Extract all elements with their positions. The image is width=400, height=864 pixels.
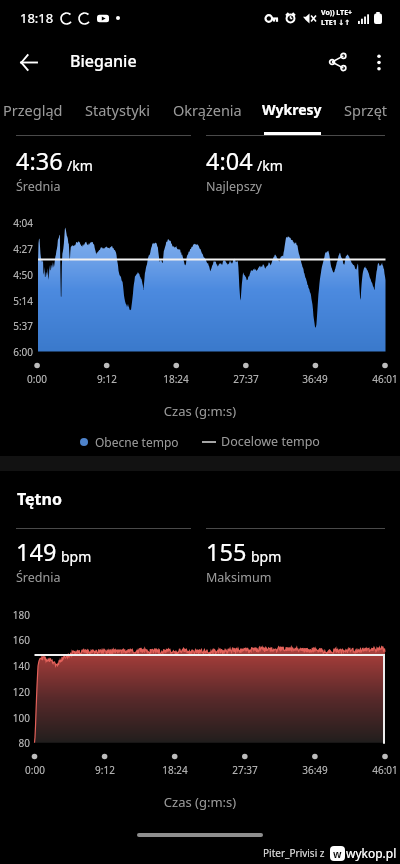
button[interactable]: Share [320,44,356,80]
button[interactable]: Sprzęt [330,88,400,135]
staticText: Czas (g:m:s) [0,402,400,420]
staticText: 9:12 [85,372,129,386]
staticText: Piter_Privisi z [263,846,325,860]
staticText: 4:36 [16,145,63,177]
button[interactable]: Przegląd [0,88,75,135]
button[interactable]: Statystyki [70,88,166,135]
button[interactable]: More options [361,44,397,80]
staticText: 149 [16,536,57,568]
staticText: Średnia [16,569,61,586]
button[interactable]: Okrążenia [160,88,254,135]
staticText: wykop.pl [346,845,397,861]
staticText: Sprzęt [344,100,388,120]
staticText: 46:01 [363,372,400,386]
staticText: 6:00 [0,345,33,359]
staticText: 5:37 [0,319,33,333]
staticText: Statystyki [85,100,151,120]
staticText: 18:24 [154,372,198,386]
staticText: LTE1 ↓↑ [321,18,351,28]
staticText: 100 [0,711,30,725]
staticText: 18:18 [20,9,54,27]
staticText: 140 [0,659,30,673]
staticText: 4:27 [0,242,33,256]
staticText: 46:01 [363,763,400,777]
staticText: 36:49 [293,372,337,386]
staticText: Średnia [16,178,61,195]
staticText: 0:00 [15,372,59,386]
staticText: 4:50 [0,268,33,282]
staticText: Docelowe tempo [221,433,320,450]
staticText: 18:24 [153,763,197,777]
staticText: bpm [61,547,92,566]
button[interactable]: Wykresy [251,88,333,135]
staticText: 120 [0,685,30,699]
staticText: 36:49 [293,763,337,777]
staticText: 80 [0,736,30,750]
staticText: 155 [206,536,247,568]
staticText: Najlepszy [206,178,262,195]
staticText: w [333,847,342,861]
staticText: 9:12 [83,763,127,777]
staticText: Maksimum [206,569,272,586]
staticText: Obecne tempo [95,434,179,450]
staticText: /km [257,156,283,175]
staticText: Przegląd [3,100,63,120]
staticText: Tętno [17,488,62,510]
staticText: Okrążenia [173,100,242,120]
staticText: 0:00 [13,763,57,777]
staticText: 27:37 [223,763,267,777]
staticText: 5:14 [0,294,33,308]
staticText: Czas (g:m:s) [0,793,400,811]
button[interactable]: Back [11,45,45,79]
staticText: 180 [0,608,30,622]
staticText: 160 [0,633,30,647]
staticText: Bieganie [70,50,137,72]
staticText: Vo)) LTE+ [321,8,353,18]
staticText: 27:37 [224,372,268,386]
staticText: 4:04 [206,145,253,177]
staticText: 4:04 [0,216,33,230]
staticText: bpm [251,547,282,566]
staticText: Wykresy [262,100,322,119]
staticText: /km [67,156,93,175]
